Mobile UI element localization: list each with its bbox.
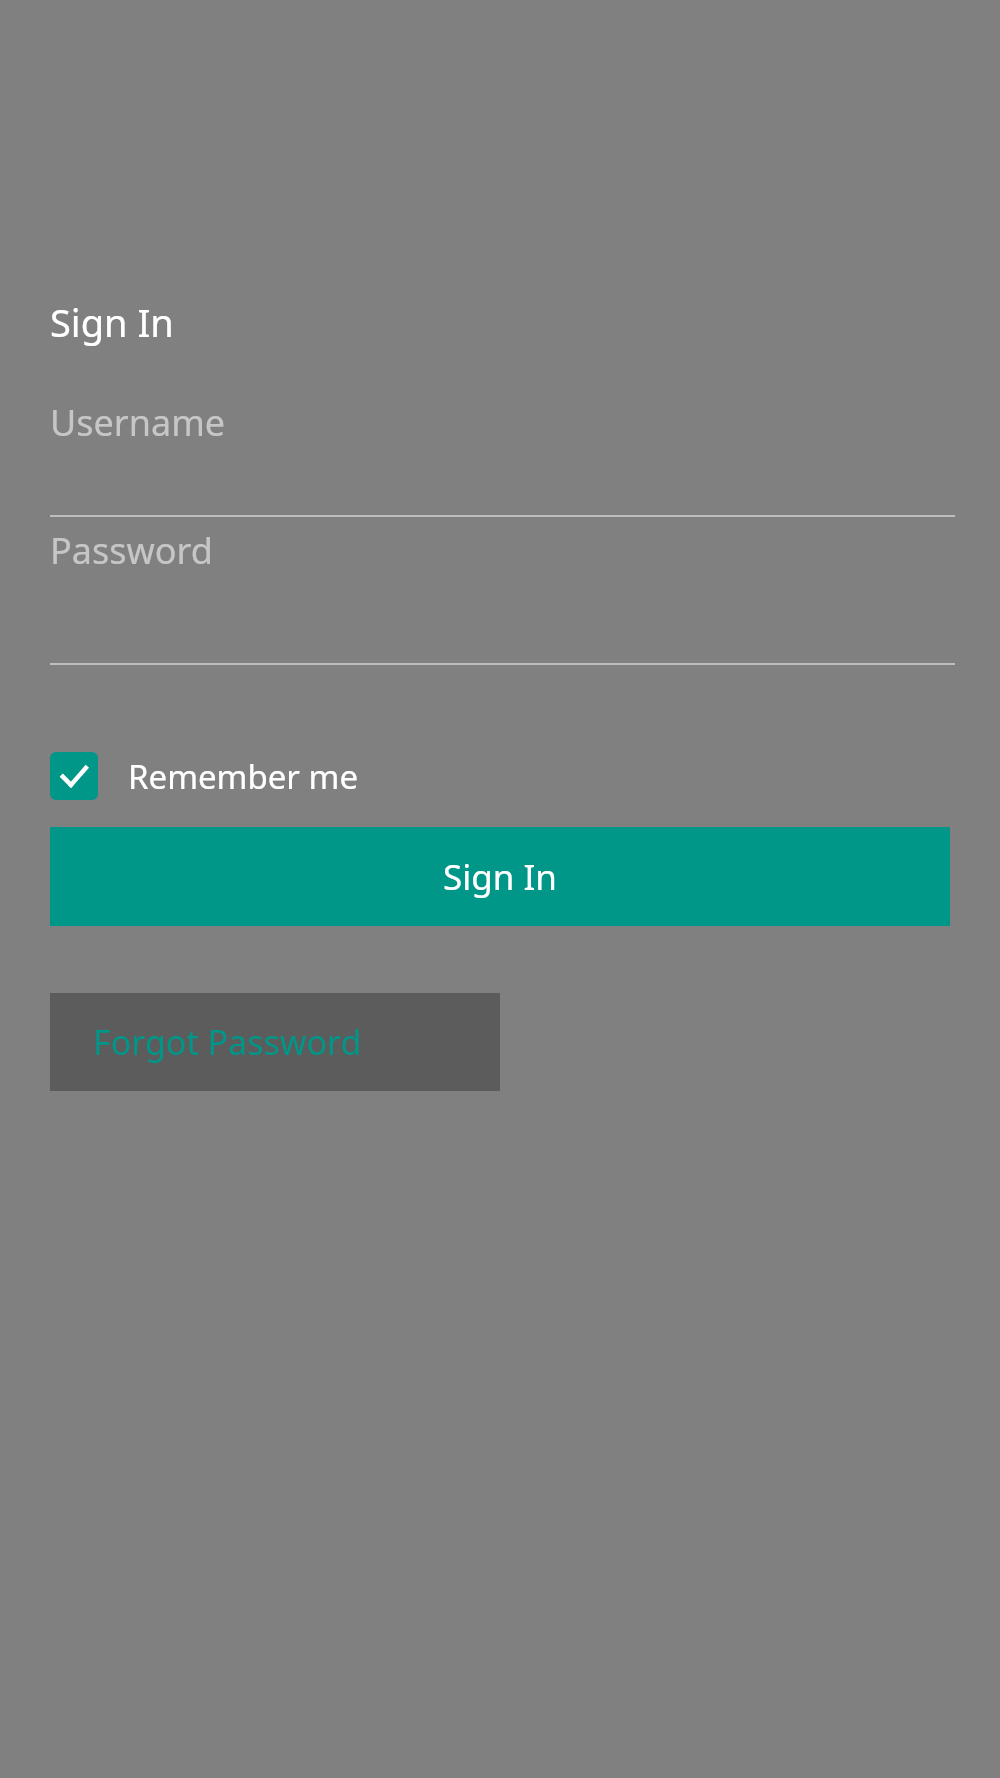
staticText: Forgot Password [93,1019,362,1065]
button[interactable]: Remember me [50,745,450,807]
staticText: Sign In [443,853,557,901]
button[interactable]: Forgot Password [50,993,500,1091]
staticText: Remember me [128,754,359,799]
button[interactable]: Sign In [50,827,950,926]
button[interactable]: Password [50,526,955,575]
button[interactable]: Username [50,398,955,447]
staticText: Sign In [50,296,174,348]
